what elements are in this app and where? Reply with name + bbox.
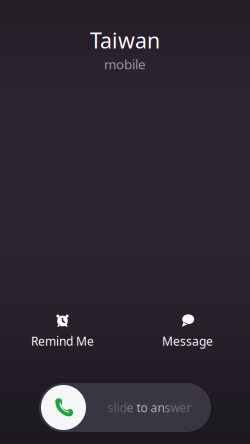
staticText: wer xyxy=(170,399,191,415)
staticText: mobile xyxy=(104,55,146,73)
staticText: Message xyxy=(162,333,213,349)
staticText: Remind Me xyxy=(31,333,94,349)
staticText: e xyxy=(126,399,136,415)
staticText: slid xyxy=(107,399,126,415)
button[interactable]: Message xyxy=(125,312,250,349)
button[interactable]: slid xyxy=(39,383,211,432)
staticText: to an xyxy=(136,399,164,415)
button[interactable]: Remind Me xyxy=(0,312,125,349)
staticText: s xyxy=(164,399,170,415)
staticText: Taiwan xyxy=(90,26,160,54)
